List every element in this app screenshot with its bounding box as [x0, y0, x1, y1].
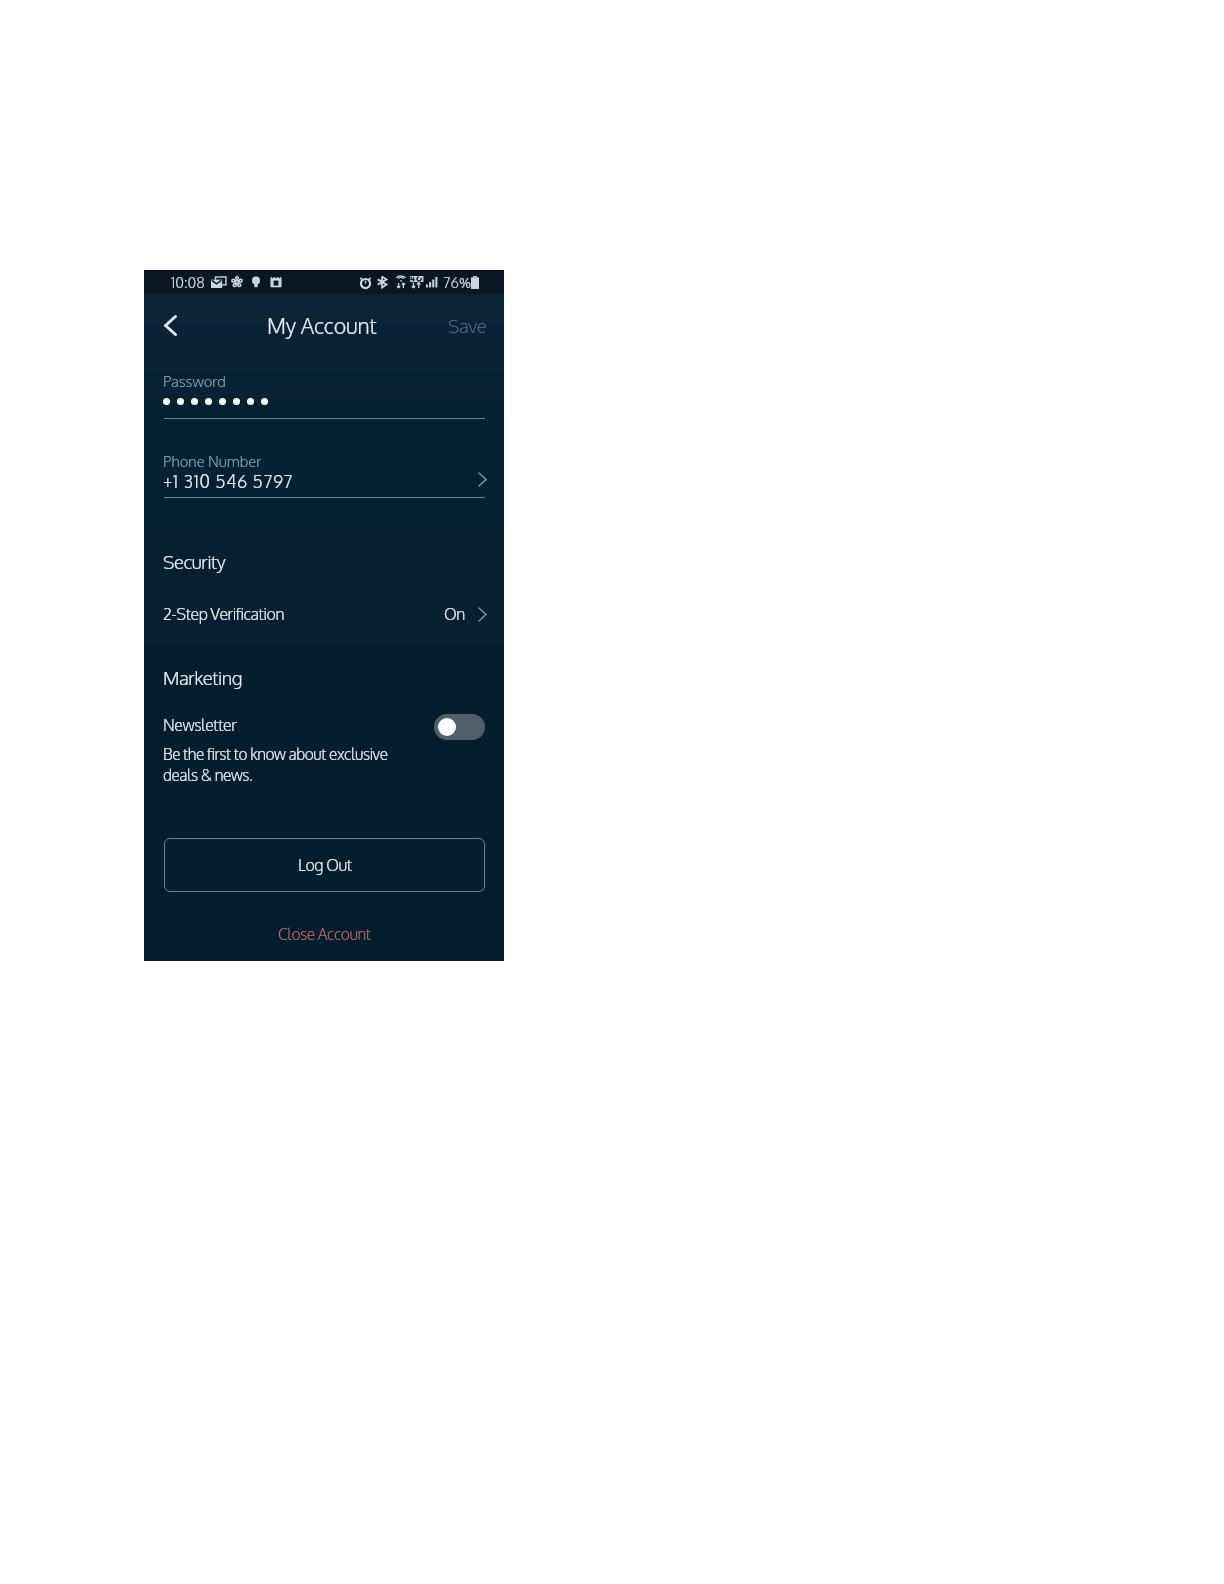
staticText: 2-Step Verification	[163, 604, 284, 624]
staticText: 10:08	[171, 273, 205, 291]
staticText: 76%	[443, 272, 472, 292]
staticText: Newsletter	[163, 715, 237, 735]
staticText: My Account	[267, 312, 377, 339]
button[interactable]: Log Out	[164, 838, 485, 892]
staticText: Marketing	[163, 666, 242, 689]
staticText: On	[444, 604, 465, 624]
staticText: Be the first to know about exclusive dea…	[163, 744, 388, 784]
staticText: +1 310 546 5797	[163, 470, 294, 492]
staticText: Log Out	[298, 855, 352, 875]
staticText: Close Account	[278, 924, 371, 944]
staticText: Security	[163, 550, 226, 573]
button[interactable]: Back	[148, 303, 192, 347]
button[interactable]: 2-Step Verification	[144, 598, 504, 630]
staticText: Save	[448, 314, 487, 337]
button[interactable]: Save	[430, 300, 504, 351]
button[interactable]: +1 310 546 5797	[144, 466, 504, 496]
button[interactable]: Newsletter toggle	[434, 714, 485, 740]
staticText: Phone Number	[163, 452, 262, 471]
button[interactable]: Close Account	[144, 916, 504, 952]
staticText: Password	[163, 372, 226, 391]
